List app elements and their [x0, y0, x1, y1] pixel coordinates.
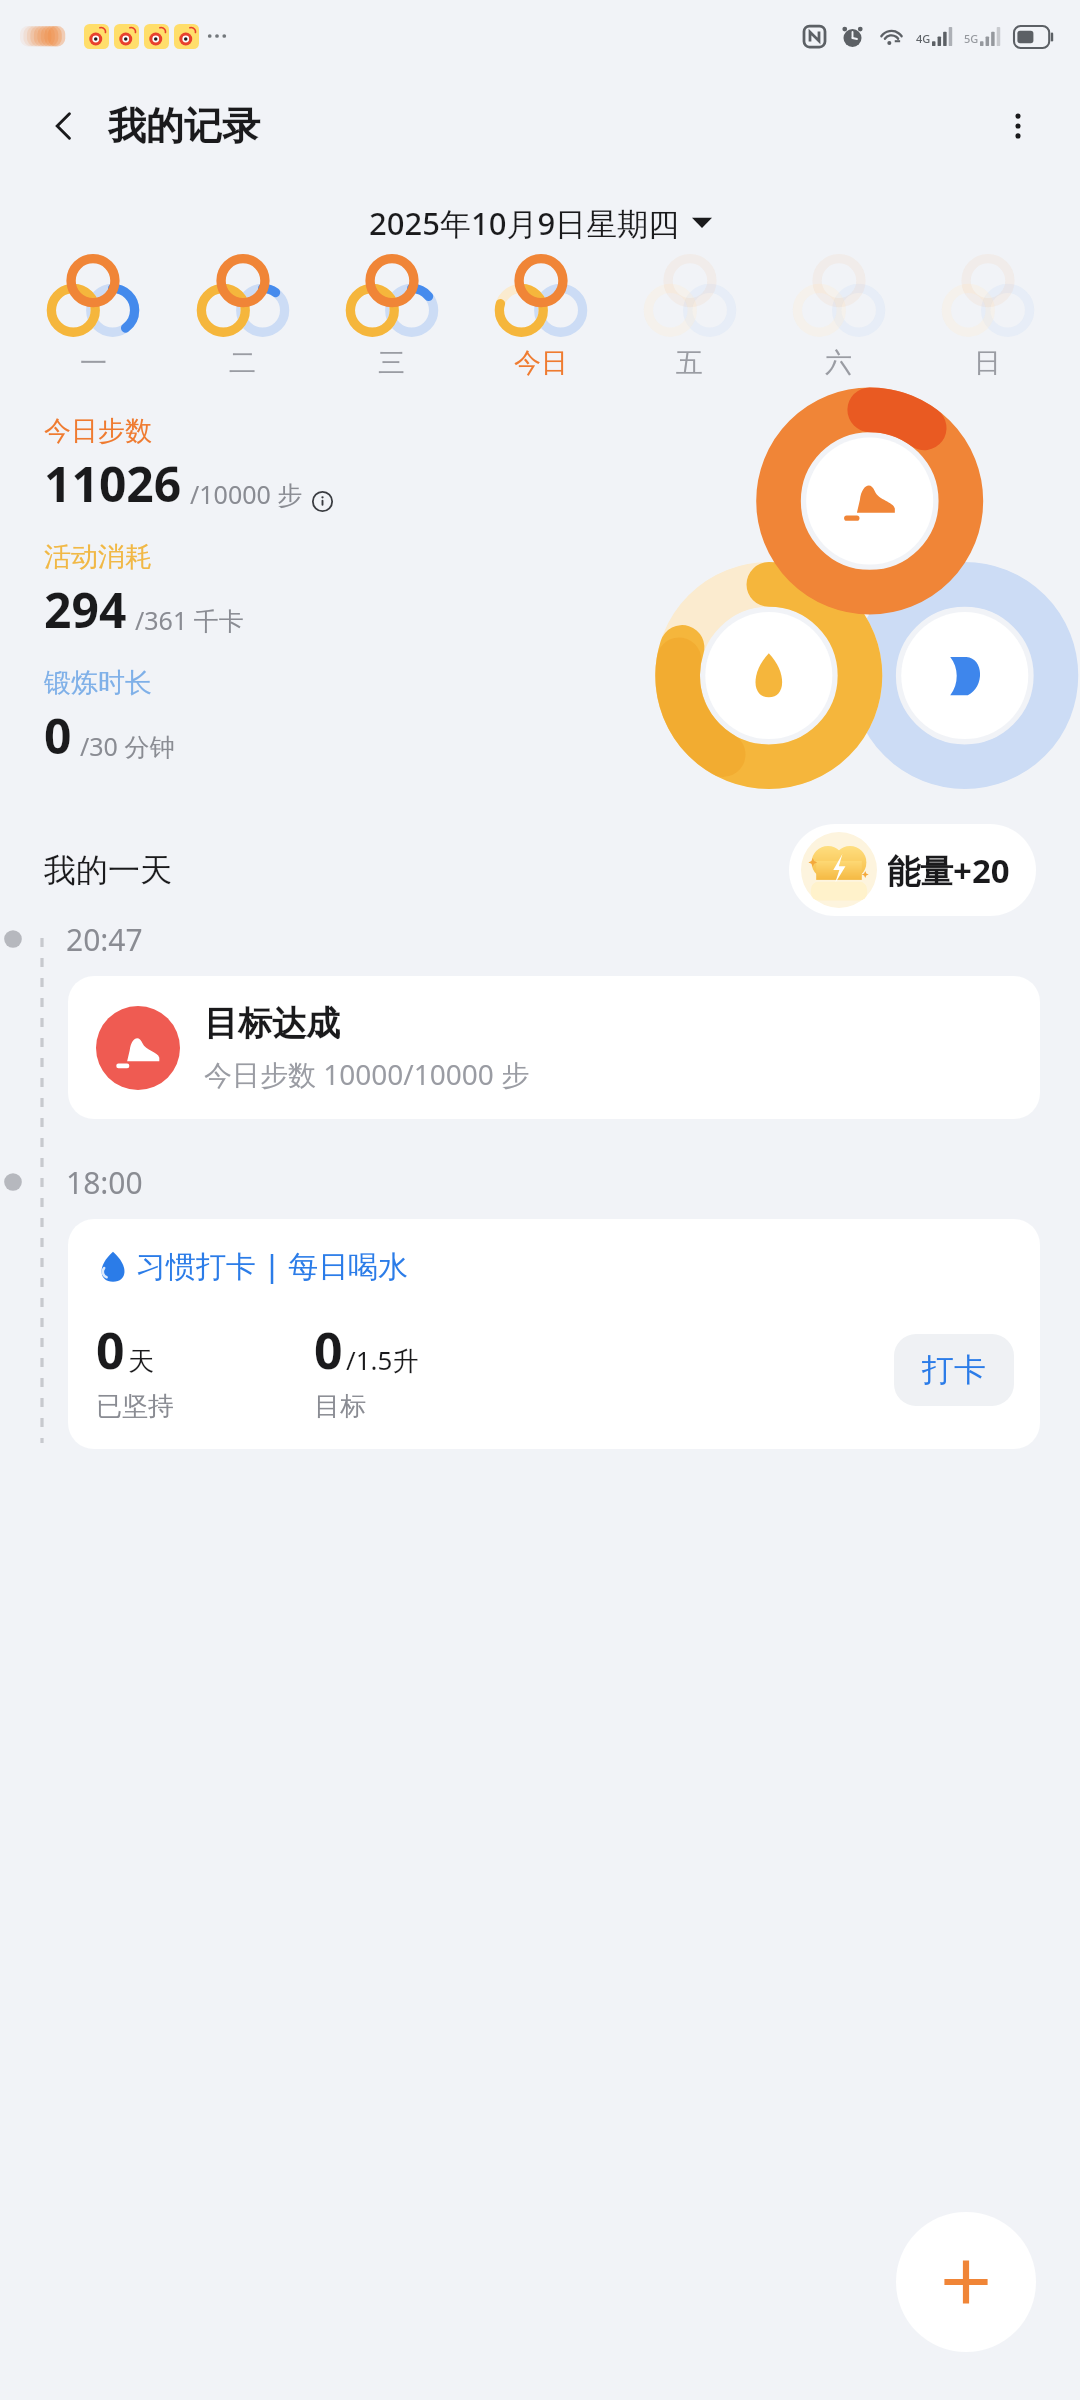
staticText: 目标	[314, 1390, 366, 1423]
staticText: 11026	[44, 451, 182, 516]
staticText: 5G	[964, 31, 979, 46]
staticText: 0	[314, 1316, 343, 1384]
staticText: 打卡	[922, 1350, 986, 1390]
staticText: /30 分钟	[80, 729, 175, 763]
staticText: 三	[378, 346, 405, 380]
staticText: 今日步数	[44, 414, 152, 448]
button[interactable]: 活动消耗	[44, 540, 244, 642]
button[interactable]: Back	[36, 98, 92, 154]
staticText: 294	[44, 577, 127, 642]
staticText: /1.5升	[346, 1342, 419, 1378]
staticText: 日	[974, 346, 1001, 380]
button[interactable]: Add record	[896, 2212, 1036, 2352]
staticText: 能量+20	[887, 848, 1010, 893]
button[interactable]: 打卡	[894, 1334, 1014, 1406]
button[interactable]: 能量+20	[789, 824, 1036, 916]
staticText: 活动消耗	[44, 540, 152, 574]
staticText: 目标达成	[204, 1002, 340, 1045]
staticText: 一	[80, 346, 107, 380]
button[interactable]: 锻炼时长	[44, 666, 175, 768]
staticText: 2025年10月9日星期四	[369, 202, 680, 244]
button[interactable]: 今日	[466, 254, 615, 380]
button[interactable]: 2025年10月9日星期四	[0, 202, 1080, 244]
staticText: 0	[44, 703, 72, 768]
staticText: 天	[128, 1345, 154, 1378]
staticText: 锻炼时长	[44, 666, 152, 700]
staticText: /361 千卡	[135, 603, 244, 637]
staticText: 我的一天	[44, 850, 172, 890]
staticText: 我的记录	[108, 102, 260, 150]
button[interactable]: 二	[168, 254, 317, 380]
button[interactable]: 今日步数	[44, 414, 337, 516]
staticText: 20:47	[66, 919, 143, 960]
button[interactable]: 六	[764, 254, 913, 380]
staticText: 五	[676, 346, 703, 380]
staticText: 已坚持	[96, 1390, 174, 1423]
staticText: 0	[96, 1316, 125, 1384]
button[interactable]: 习惯打卡 | 每日喝水	[68, 1219, 1040, 1449]
button[interactable]: More options	[990, 98, 1046, 154]
staticText: 今日步数 10000/10000 步	[204, 1055, 530, 1093]
button[interactable]: 目标达成	[68, 976, 1040, 1119]
staticText: 4G	[916, 31, 931, 46]
staticText: 习惯打卡 | 每日喝水	[136, 1245, 409, 1286]
button[interactable]: 三	[317, 254, 466, 380]
button[interactable]: 一	[18, 254, 168, 380]
button[interactable]: 日	[913, 254, 1062, 380]
staticText: 六	[825, 346, 852, 380]
staticText: 今日	[514, 346, 568, 380]
button[interactable]: 五	[615, 254, 764, 380]
staticText: /10000 步	[190, 477, 303, 511]
staticText: 二	[229, 346, 256, 380]
staticText: 18:00	[66, 1162, 143, 1203]
